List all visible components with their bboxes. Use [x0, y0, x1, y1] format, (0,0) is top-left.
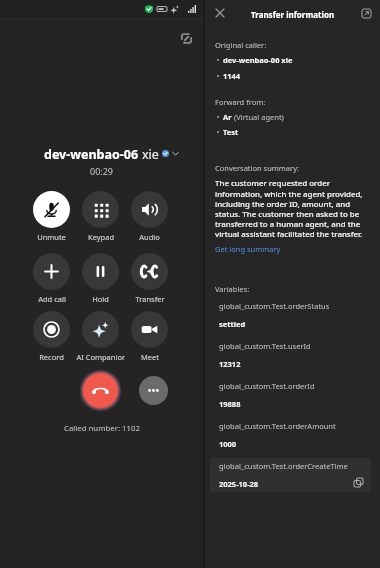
button[interactable]: Open in new window [357, 4, 375, 22]
staticText: Audio [139, 232, 160, 242]
button[interactable]: Minimize window [177, 29, 195, 47]
staticText: 12312 [219, 359, 241, 369]
staticText: AI Companion [76, 352, 125, 362]
staticText: Called number: 1102 [64, 423, 140, 434]
staticText: global_custom.Test.userId [219, 341, 311, 351]
staticText: global_custom.Test.orderId [219, 381, 315, 391]
button[interactable]: Get long summary [215, 244, 281, 254]
button[interactable]: global_custom.Test.orderAmount [210, 418, 371, 452]
staticText: Meet [141, 352, 159, 362]
button[interactable]: Meet [125, 311, 174, 362]
button[interactable]: Copy [352, 476, 364, 488]
button[interactable]: End call [79, 369, 122, 412]
staticText: Conversation summary: [215, 163, 300, 173]
staticText: global_custom.Test.orderCreateTime [219, 461, 348, 471]
staticText: Unmute [37, 232, 66, 242]
button[interactable]: Add call [27, 253, 76, 304]
staticText: dev-wenbao-06 xie [223, 55, 293, 65]
staticText: Ar [223, 112, 234, 122]
button[interactable]: global_custom.Test.orderId [210, 378, 371, 412]
button[interactable]: Keypad [76, 191, 125, 242]
staticText: Forward from: [215, 97, 266, 107]
staticText: Add call [38, 294, 66, 304]
staticText: 19888 [219, 399, 241, 409]
staticText: 00:29 [90, 165, 114, 177]
button[interactable]: Hold [76, 253, 125, 304]
button[interactable]: More options [139, 376, 168, 405]
staticText: 1000 [219, 439, 237, 449]
button[interactable]: Audio [125, 191, 174, 242]
staticText: 1144 [223, 71, 241, 81]
button[interactable]: AI Companion [76, 311, 125, 362]
staticText: settled [219, 319, 246, 329]
staticText: Transfer information [251, 9, 335, 20]
staticText: Original caller: [215, 40, 267, 50]
staticText: Record [39, 352, 64, 362]
button[interactable]: global_custom.Test.userId [210, 338, 371, 372]
staticText: Variables: [215, 284, 250, 294]
staticText: The customer requested order information… [215, 178, 370, 239]
button[interactable]: global_custom.Test.orderStatus [210, 298, 371, 332]
button[interactable]: Unmute [27, 191, 76, 242]
button[interactable]: global_custom.Test.orderCreateTime [210, 458, 371, 492]
button[interactable]: Transfer [125, 253, 174, 304]
staticText: Keypad [88, 232, 114, 242]
staticText: (Virtual agent) [234, 112, 284, 122]
button[interactable]: Record [27, 311, 76, 362]
staticText: dev-wenbao-06 [44, 146, 142, 160]
staticText: global_custom.Test.orderAmount [219, 421, 336, 431]
staticText: xie [142, 146, 159, 160]
staticText: Transfer [135, 294, 165, 304]
staticText: Hold [92, 294, 109, 304]
button[interactable]: Close [211, 4, 229, 22]
staticText: Test [223, 127, 239, 137]
staticText: 2025-10-28 [219, 479, 259, 489]
staticText: global_custom.Test.orderStatus [219, 301, 330, 311]
